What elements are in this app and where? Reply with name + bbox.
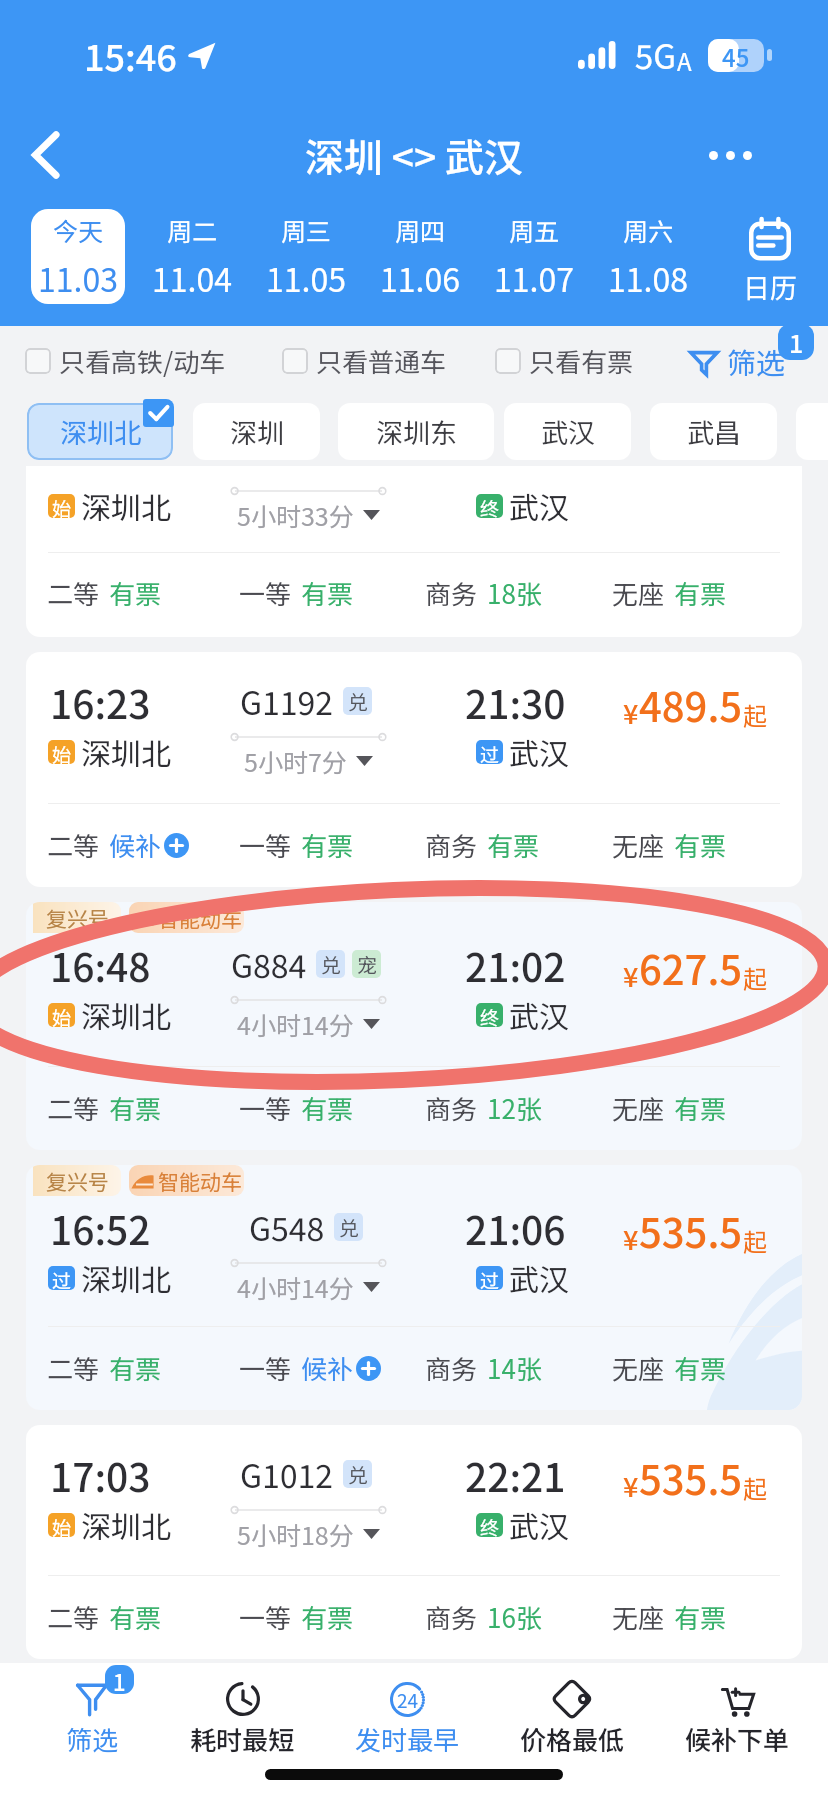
staticText: 489.5 xyxy=(639,676,743,734)
button[interactable]: 17:03 xyxy=(26,1425,802,1659)
staticText: 45 xyxy=(722,39,750,72)
staticText: 有票 xyxy=(674,1349,727,1387)
button[interactable]: 价格最低 xyxy=(490,1663,655,1763)
button[interactable]: 深圳 xyxy=(193,403,320,460)
staticText: 周三 xyxy=(281,212,332,248)
staticText: 二等 xyxy=(47,1089,100,1127)
button[interactable]: 只看高铁/动车 xyxy=(25,342,226,380)
staticText: 终 xyxy=(480,1003,500,1027)
staticText: 无座 xyxy=(612,1598,665,1636)
staticText: 过 xyxy=(52,1266,72,1290)
staticText: G884 xyxy=(231,941,307,987)
staticText: 复兴号 xyxy=(46,903,109,933)
staticText: 5小时7分 xyxy=(244,743,347,779)
button[interactable]: 只看有票 xyxy=(495,342,634,380)
staticText: 日历 xyxy=(743,267,797,306)
staticText: G548 xyxy=(249,1204,325,1250)
staticText: 智能动车 xyxy=(158,1166,242,1196)
staticText: 深圳北 xyxy=(81,1256,171,1299)
button[interactable]: 深圳北 xyxy=(27,403,173,460)
staticText: 商务 xyxy=(425,1598,478,1636)
staticText: 深圳北 xyxy=(60,412,141,451)
staticText: 12张 xyxy=(487,1089,542,1127)
button[interactable]: 耗时最短 xyxy=(160,1663,325,1763)
staticText: 有票 xyxy=(301,574,354,612)
staticText: 14张 xyxy=(487,1349,542,1387)
button[interactable]: 筛选 xyxy=(689,340,808,382)
staticText: 18张 xyxy=(487,574,542,612)
staticText: 商务 xyxy=(425,826,478,864)
staticText: A xyxy=(677,43,692,78)
staticText: 二等 xyxy=(47,1598,100,1636)
staticText: 武汉 xyxy=(509,484,569,527)
staticText: 兑 xyxy=(348,687,368,715)
button[interactable]: 16:23 xyxy=(26,652,802,887)
staticText: 过 xyxy=(480,1266,500,1290)
staticText: 今天 xyxy=(53,212,104,248)
staticText: 16:52 xyxy=(50,1200,151,1256)
staticText: 候补 xyxy=(301,1349,354,1387)
button[interactable]: 周二 xyxy=(145,209,239,304)
staticText: 周五 xyxy=(509,212,560,248)
staticText: 二等 xyxy=(47,826,100,864)
button[interactable]: 深圳东 xyxy=(338,403,494,460)
staticText: 复兴号 xyxy=(46,1166,109,1196)
button[interactable]: 日历 xyxy=(712,198,828,326)
button[interactable]: 始 xyxy=(26,466,802,637)
staticText: 无座 xyxy=(612,1089,665,1127)
staticText: 11.08 xyxy=(608,255,688,301)
staticText: 二等 xyxy=(47,1349,100,1387)
staticText: 535.5 xyxy=(639,1202,743,1260)
staticText: 周二 xyxy=(167,212,218,248)
staticText: 终 xyxy=(480,1513,500,1537)
staticText: 起 xyxy=(743,697,767,732)
staticText: 只看普通车 xyxy=(316,342,447,380)
button[interactable]: 只看普通车 xyxy=(282,342,447,380)
button[interactable]: 周三 xyxy=(259,209,353,304)
button[interactable]: 武汉 xyxy=(504,403,631,460)
staticText: 11.03 xyxy=(38,255,118,301)
staticText: 16:23 xyxy=(50,674,151,730)
staticText: 武汉 xyxy=(509,1503,569,1546)
staticText: 起 xyxy=(743,1470,767,1505)
staticText: 一等 xyxy=(239,826,292,864)
staticText: 21:30 xyxy=(465,674,566,730)
staticText: 一等 xyxy=(239,1349,292,1387)
staticText: 过 xyxy=(480,740,500,764)
staticText: 武昌 xyxy=(687,412,741,451)
staticText: ¥ xyxy=(623,1466,639,1505)
button[interactable]: 24 xyxy=(325,1663,490,1763)
staticText: 兑 xyxy=(321,950,341,978)
button[interactable]: 复兴号 xyxy=(26,1165,802,1410)
staticText: 深圳 xyxy=(230,412,284,451)
staticText: 兑 xyxy=(348,1460,368,1488)
staticText: 始 xyxy=(52,1003,72,1027)
staticText: 终 xyxy=(480,494,500,518)
staticText: 627.5 xyxy=(639,939,743,997)
button[interactable]: 周六 xyxy=(601,209,695,304)
button[interactable]: Back xyxy=(10,119,82,191)
staticText: 有票 xyxy=(674,826,727,864)
button[interactable]: 复兴号 xyxy=(26,902,802,1150)
staticText: 1 xyxy=(113,1665,126,1694)
staticText: 深圳北 xyxy=(81,484,171,527)
button[interactable]: 周五 xyxy=(487,209,581,304)
staticText: 5G xyxy=(635,31,677,79)
staticText: 有票 xyxy=(301,826,354,864)
button[interactable]: More options xyxy=(694,119,766,191)
button[interactable]: 今天 xyxy=(31,209,125,304)
staticText: 起 xyxy=(743,960,767,995)
button[interactable]: 1 xyxy=(26,1663,158,1763)
staticText: 16:48 xyxy=(50,937,151,993)
staticText: 有票 xyxy=(109,574,162,612)
staticText: ¥ xyxy=(623,956,639,995)
staticText: 候补 xyxy=(109,826,162,864)
staticText: 16张 xyxy=(487,1598,542,1636)
button[interactable]: 候补下单 xyxy=(655,1663,820,1763)
staticText: 有票 xyxy=(109,1349,162,1387)
staticText: 有票 xyxy=(109,1089,162,1127)
staticText: 11.06 xyxy=(380,255,460,301)
staticText: 有票 xyxy=(301,1089,354,1127)
button[interactable]: 周四 xyxy=(373,209,467,304)
button[interactable]: 武昌 xyxy=(650,403,777,460)
